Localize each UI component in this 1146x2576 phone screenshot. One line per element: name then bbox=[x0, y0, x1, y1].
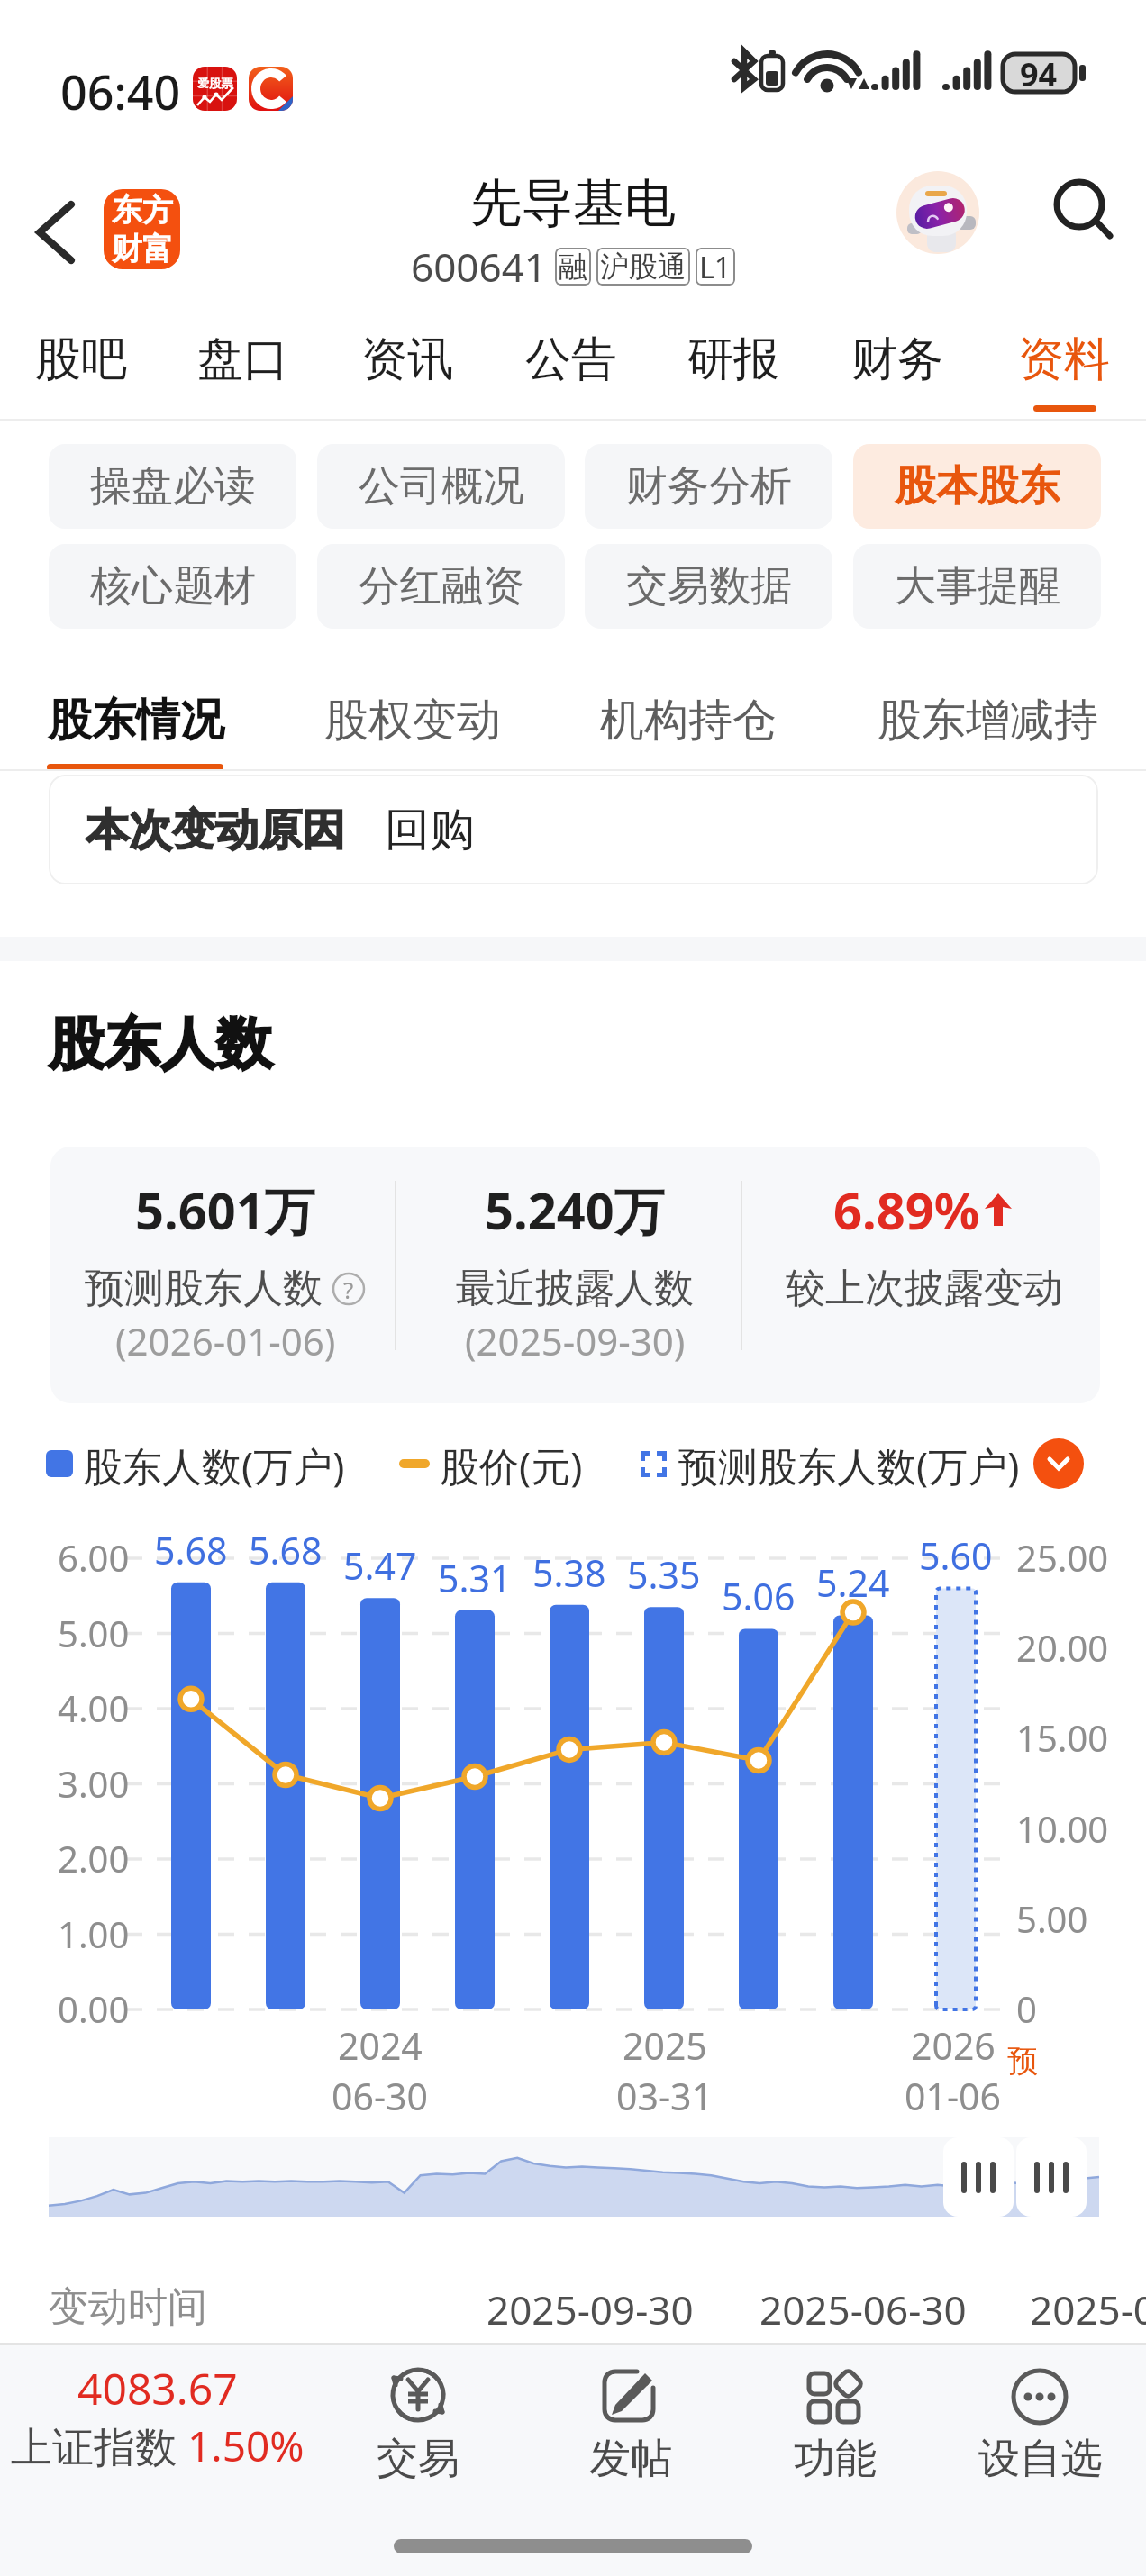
staticText: 2026 bbox=[911, 2020, 996, 2071]
staticText: 预测股东人数(万户) bbox=[678, 1438, 1020, 1492]
staticText: 公司概况 bbox=[359, 460, 524, 512]
button[interactable]: 资讯 bbox=[335, 297, 479, 420]
staticText: 2025-0 bbox=[1030, 2282, 1146, 2336]
staticText: 股东增减持 bbox=[878, 693, 1098, 748]
staticText: 10.00 bbox=[1016, 1804, 1109, 1853]
button[interactable]: 盘口 bbox=[171, 297, 315, 420]
staticText: 盘口 bbox=[197, 331, 289, 388]
staticText: 操盘必读 bbox=[90, 460, 256, 512]
staticText: 0 bbox=[1016, 1984, 1037, 2033]
staticText: 600641 bbox=[411, 240, 548, 294]
staticText: 3.00 bbox=[58, 1759, 130, 1808]
staticText: 股吧 bbox=[35, 331, 127, 388]
staticText: 2025-06-30 bbox=[759, 2282, 967, 2336]
button[interactable]: 大事提醒 bbox=[853, 544, 1101, 629]
staticText: 设自选 bbox=[978, 2433, 1103, 2485]
staticText: 股东人数 bbox=[49, 1009, 272, 1079]
staticText: 财富 bbox=[112, 230, 173, 268]
staticText: 25.00 bbox=[1016, 1533, 1109, 1582]
staticText: 01-06 bbox=[905, 2071, 1002, 2121]
staticText: 1.00 bbox=[58, 1909, 130, 1958]
button[interactable]: East Money bbox=[104, 189, 180, 269]
staticText: 股本股东 bbox=[895, 460, 1060, 512]
button[interactable]: 分红融资 bbox=[317, 544, 565, 629]
button[interactable]: 股吧 bbox=[9, 297, 153, 420]
staticText: 变动时间 bbox=[49, 2282, 207, 2332]
staticText: 股东人数(万户) bbox=[83, 1438, 345, 1492]
staticText: 分红融资 bbox=[359, 560, 524, 612]
staticText: 2.00 bbox=[58, 1834, 130, 1882]
button[interactable]: 4083.67 bbox=[0, 2350, 315, 2494]
staticText: 大事提醒 bbox=[895, 560, 1060, 612]
staticText: 资讯 bbox=[361, 331, 453, 388]
button[interactable]: 股权变动 bbox=[286, 663, 539, 771]
staticText: 4083.67 bbox=[77, 2359, 238, 2417]
staticText: (2025-09-30) bbox=[465, 1315, 686, 1366]
button[interactable]: 公告 bbox=[499, 297, 643, 420]
button[interactable]: 资料 bbox=[992, 297, 1136, 420]
button[interactable]: 股东情况 bbox=[10, 663, 262, 771]
button[interactable]: 设自选 bbox=[937, 2352, 1144, 2496]
staticText: 交易数据 bbox=[626, 560, 792, 612]
staticText: 5.00 bbox=[1016, 1894, 1088, 1943]
button[interactable]: 财务分析 bbox=[585, 444, 832, 529]
button[interactable]: 公司概况 bbox=[317, 444, 565, 529]
staticText: 5.31 bbox=[438, 1553, 512, 1603]
staticText: 2025 bbox=[623, 2020, 707, 2071]
staticText: 融 bbox=[559, 249, 587, 285]
staticText: 2024 bbox=[338, 2020, 423, 2071]
button[interactable]: 研报 bbox=[661, 297, 805, 420]
staticText: ? bbox=[343, 1274, 354, 1305]
staticText: 94 bbox=[1020, 52, 1058, 92]
staticText: 先导基电 bbox=[470, 171, 676, 236]
button[interactable]: 操盘必读 bbox=[49, 444, 296, 529]
button[interactable]: 财务 bbox=[825, 297, 969, 420]
staticText: 本次变动原因 bbox=[86, 803, 345, 857]
staticText: 资料 bbox=[1018, 331, 1110, 388]
staticText: 5.240万 bbox=[485, 1175, 665, 1244]
staticText: 股价(元) bbox=[440, 1438, 583, 1492]
staticText: 功能 bbox=[794, 2433, 877, 2485]
staticText: 6.89% bbox=[833, 1175, 980, 1244]
button[interactable]: 发帖 bbox=[527, 2352, 734, 2496]
staticText: 交易 bbox=[377, 2433, 459, 2485]
button[interactable]: 股本股东 bbox=[853, 444, 1101, 529]
button[interactable] bbox=[1016, 2137, 1087, 2217]
button[interactable]: Back bbox=[11, 187, 101, 277]
button[interactable]: 股东增减持 bbox=[861, 663, 1114, 771]
staticText: 5.00 bbox=[58, 1609, 130, 1657]
staticText: 5.68 bbox=[249, 1525, 323, 1575]
button[interactable]: 交易 bbox=[314, 2352, 522, 2496]
button[interactable]: 交易数据 bbox=[585, 544, 832, 629]
staticText: 最近披露人数 bbox=[456, 1264, 694, 1313]
staticText: 财务分析 bbox=[626, 460, 792, 512]
button[interactable]: AI assistant bbox=[896, 171, 979, 254]
button[interactable]: 机构持仓 bbox=[562, 663, 814, 771]
button[interactable]: Search bbox=[1045, 173, 1124, 252]
staticText: 机构持仓 bbox=[600, 693, 777, 748]
staticText: 20.00 bbox=[1016, 1623, 1109, 1672]
button[interactable]: Collapse bbox=[1033, 1438, 1084, 1489]
staticText: 发帖 bbox=[589, 2433, 672, 2485]
staticText: 5.06 bbox=[722, 1571, 796, 1621]
staticText: 5.60 bbox=[919, 1530, 993, 1581]
staticText: 股东情况 bbox=[48, 693, 224, 748]
staticText: 5.601万 bbox=[135, 1175, 315, 1244]
staticText: 较上次披露变动 bbox=[786, 1264, 1063, 1313]
staticText: 5.68 bbox=[154, 1525, 228, 1575]
staticText: 上证指数 bbox=[11, 2417, 187, 2474]
staticText: 东方 bbox=[112, 191, 173, 230]
button[interactable]: 核心题材 bbox=[49, 544, 296, 629]
button[interactable] bbox=[943, 2137, 1014, 2217]
staticText: 核心题材 bbox=[90, 560, 256, 612]
staticText: 爱股票 bbox=[197, 76, 232, 90]
staticText: (2026-01-06) bbox=[115, 1315, 336, 1366]
staticText: 0.00 bbox=[58, 1984, 130, 2033]
button[interactable]: 功能 bbox=[732, 2352, 939, 2496]
staticText: 4.00 bbox=[58, 1683, 130, 1732]
staticText: 沪股通 bbox=[600, 249, 687, 285]
staticText: 公告 bbox=[525, 331, 617, 388]
button[interactable]: 本次变动原因 bbox=[49, 775, 1098, 884]
staticText: 财务 bbox=[851, 331, 943, 388]
staticText: L1 bbox=[699, 248, 732, 286]
